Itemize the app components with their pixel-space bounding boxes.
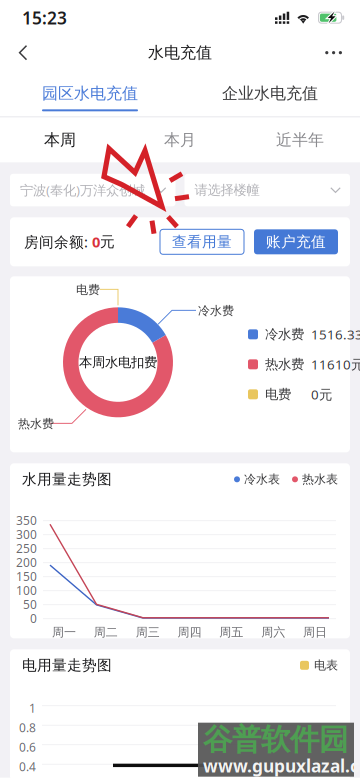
staticText: 200 — [16, 554, 37, 570]
staticText: 250 — [16, 540, 37, 556]
staticText: 周日 — [303, 625, 327, 640]
staticText: 本月 — [164, 130, 196, 150]
button[interactable]: 查看用量 — [160, 229, 244, 254]
staticText: 电用量走势图 — [22, 656, 112, 674]
staticText: 1 — [29, 700, 36, 716]
staticText: 350 — [16, 512, 37, 528]
button[interactable]: 宁波(奉化)万洋众创城 — [10, 174, 175, 206]
staticText: 100 — [16, 582, 37, 598]
staticText: 0.6 — [19, 739, 36, 755]
button[interactable]: Back — [0, 37, 42, 69]
button[interactable]: 企业水电充值 — [180, 69, 360, 116]
staticText: 0元 — [311, 385, 332, 403]
staticText: 热水费 — [265, 356, 304, 372]
staticText: 周一 — [52, 625, 76, 640]
button[interactable]: 园区水电充值 — [0, 69, 180, 116]
staticText: 0 — [30, 610, 37, 626]
staticText: 热水表 — [302, 472, 338, 487]
button[interactable]: 本周 — [0, 117, 120, 162]
staticText: 请选择楼幢 — [194, 182, 259, 198]
staticText: 1516.33元 — [311, 325, 360, 343]
staticText: 冷水表 — [244, 472, 280, 487]
button[interactable]: 本月 — [120, 117, 240, 162]
staticText: 50 — [23, 596, 37, 612]
staticText: 周二 — [94, 625, 118, 640]
staticText: 0 — [92, 232, 100, 252]
staticText: 房间余额: — [24, 232, 92, 252]
staticText: www.gupuxlazal.com — [203, 754, 360, 777]
staticText: 0.8 — [19, 720, 36, 735]
staticText: 水用量走势图 — [22, 470, 112, 488]
staticText: 近半年 — [276, 130, 324, 150]
staticText: 本周水电扣费 — [79, 354, 157, 370]
staticText: 水电充值 — [148, 43, 212, 62]
button[interactable]: 近半年 — [240, 117, 360, 162]
staticText: 谷普软件园 — [203, 722, 348, 758]
staticText: 企业水电充值 — [222, 84, 318, 103]
staticText: 15:23 — [22, 6, 67, 29]
staticText: 周三 — [136, 625, 160, 640]
staticText: 150 — [16, 568, 37, 584]
staticText: 电表 — [314, 658, 338, 673]
staticText: 0.4 — [19, 759, 36, 774]
staticText: 本周 — [44, 130, 76, 150]
staticText: 冷水费 — [198, 303, 234, 318]
staticText: 宁波(奉化)万洋众创城 — [20, 181, 145, 199]
staticText: 周六 — [261, 625, 285, 640]
staticText: 300 — [16, 526, 37, 542]
button[interactable]: 账户充值 — [254, 229, 338, 254]
staticText: 元 — [100, 233, 115, 251]
staticText: 热水费 — [18, 416, 54, 431]
staticText: 园区水电充值 — [42, 84, 138, 103]
staticText: 账户充值 — [266, 233, 326, 251]
staticText: 周四 — [177, 625, 201, 640]
button[interactable]: 请选择楼幢 — [184, 174, 350, 206]
staticText: 电费 — [76, 282, 100, 297]
staticText: 电费 — [265, 386, 291, 402]
button[interactable]: More options — [311, 37, 360, 69]
staticText: 11610元 — [311, 355, 360, 373]
staticText: 周五 — [219, 625, 243, 640]
staticText: 查看用量 — [172, 233, 232, 251]
staticText: 冷水费 — [265, 326, 304, 342]
